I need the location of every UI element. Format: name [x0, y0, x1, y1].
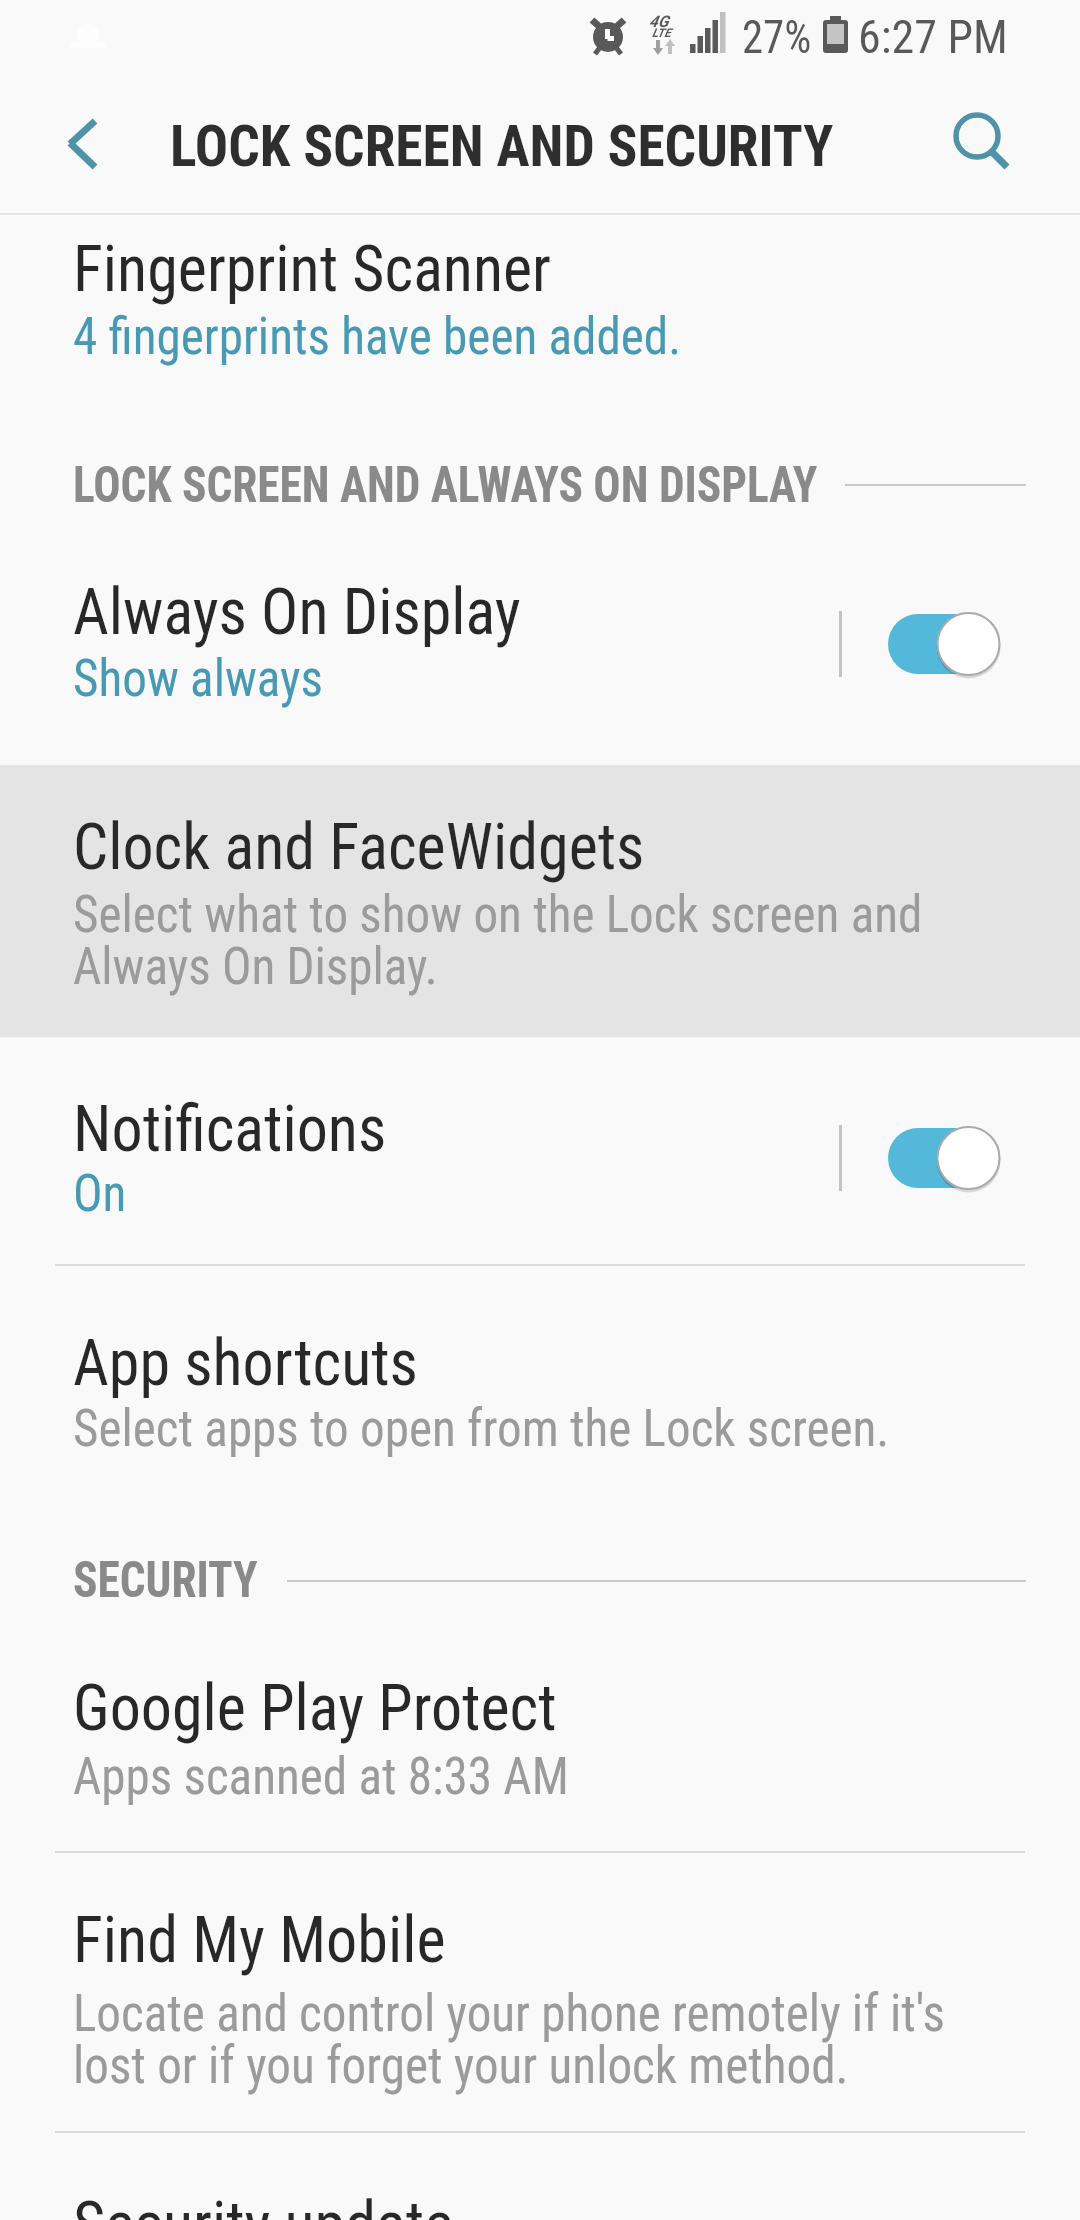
button[interactable]: [870, 1118, 1010, 1198]
button[interactable]: Security update: [0, 2160, 1080, 2220]
staticText: App shortcuts: [73, 1326, 418, 1401]
staticText: Select what to show on the Lock screen a…: [73, 884, 923, 945]
staticText: Locate and control your phone remotely i…: [73, 1983, 945, 2044]
staticText: Select apps to open from the Lock screen…: [73, 1398, 889, 1459]
staticText: 6:27 PM: [858, 10, 1008, 64]
staticText: Always On Display: [73, 575, 521, 650]
staticText: LOCK SCREEN AND ALWAYS ON DISPLAY: [73, 456, 818, 515]
button[interactable]: [925, 90, 1035, 195]
button[interactable]: [35, 90, 135, 195]
staticText: SECURITY: [73, 1551, 258, 1610]
staticText: Show always: [73, 648, 323, 709]
staticText: On: [73, 1163, 127, 1224]
staticText: Security update: [73, 2188, 453, 2220]
button[interactable]: Google Play Protect: [0, 1645, 1080, 1851]
staticText: Fingerprint Scanner: [73, 232, 551, 307]
staticText: lost or if you forget your unlock method…: [73, 2035, 849, 2096]
button[interactable]: Notifications: [0, 1065, 1080, 1264]
staticText: Notifications: [73, 1092, 386, 1167]
staticText: Apps scanned at 8:33 AM: [73, 1746, 569, 1807]
staticText: 4G: [649, 12, 669, 31]
staticText: 4 fingerprints have been added.: [73, 306, 682, 367]
staticText: LOCK SCREEN AND SECURITY: [170, 112, 834, 180]
button[interactable]: App shortcuts: [0, 1300, 1080, 1480]
button[interactable]: Clock and FaceWidgets: [0, 765, 1080, 1037]
button[interactable]: [870, 604, 1010, 684]
staticText: Find My Mobile: [73, 1903, 445, 1978]
staticText: 27%: [742, 10, 812, 64]
staticText: Clock and FaceWidgets: [73, 810, 645, 885]
button[interactable]: Always On Display: [0, 552, 1080, 742]
button[interactable]: Fingerprint Scanner: [0, 210, 1080, 390]
staticText: LTE: [652, 26, 671, 40]
staticText: Always On Display.: [73, 936, 439, 997]
button[interactable]: Find My Mobile: [0, 1875, 1080, 2131]
staticText: Google Play Protect: [73, 1671, 557, 1746]
